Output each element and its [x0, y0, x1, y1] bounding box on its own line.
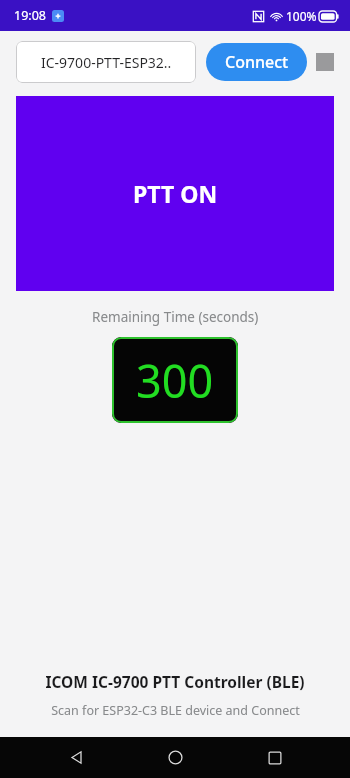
staticText: 300: [136, 350, 214, 411]
staticText: 19:08: [14, 7, 46, 24]
staticText: IC-9700-PTT-ESP32..: [41, 53, 172, 72]
staticText: Connect: [225, 51, 289, 73]
staticText: PTT ON: [133, 178, 218, 209]
button[interactable]: Connect: [206, 43, 307, 81]
staticText: 100%: [286, 8, 317, 24]
staticText: Remaining Time (seconds): [92, 308, 259, 326]
staticText: Scan for ESP32-C3 BLE device and Connect: [51, 702, 300, 719]
staticText: ICOM IC-9700 PTT Controller (BLE): [45, 671, 305, 692]
button[interactable]: IC-9700-PTT-ESP32..: [16, 41, 196, 83]
button[interactable]: Back: [52, 737, 100, 778]
button[interactable]: Recent apps: [251, 737, 299, 778]
button[interactable]: Home: [151, 737, 199, 778]
button[interactable]: PTT ON: [16, 96, 334, 291]
